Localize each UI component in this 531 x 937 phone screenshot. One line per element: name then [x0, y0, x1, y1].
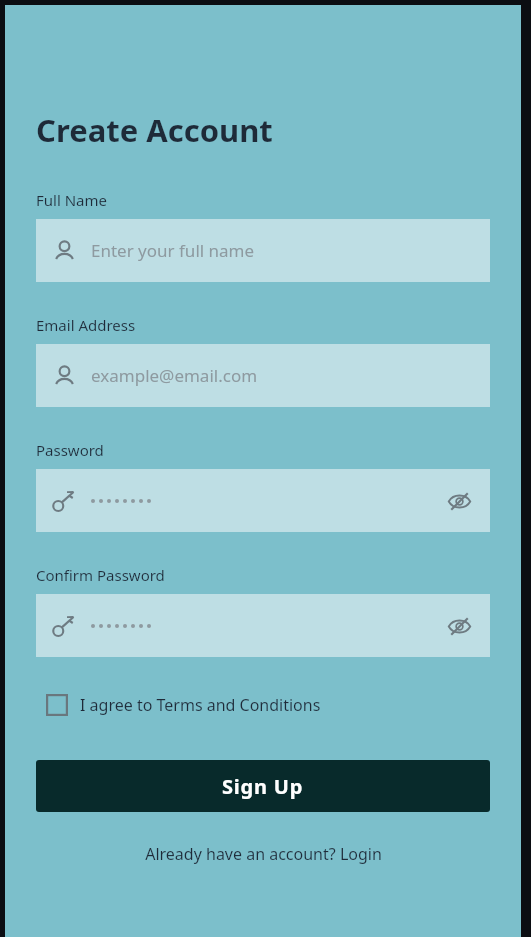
- button[interactable]: Toggle password visibility: [36, 594, 490, 657]
- button[interactable]: Toggle password visibility: [442, 609, 476, 643]
- staticText: I agree to Terms and Conditions: [80, 694, 321, 716]
- staticText: Email Address: [36, 315, 136, 335]
- button[interactable]: Toggle password visibility: [442, 484, 476, 518]
- staticText: Password: [36, 440, 104, 460]
- staticText: Enter your full name: [91, 239, 255, 262]
- staticText: Confirm Password: [36, 565, 165, 585]
- button[interactable]: example@email.com: [36, 344, 490, 407]
- staticText: Sign Up: [222, 773, 304, 800]
- button[interactable]: Already have an account? Login: [137, 839, 390, 869]
- staticText: Full Name: [36, 190, 107, 210]
- button[interactable]: Sign Up: [36, 760, 490, 812]
- staticText: Create Account: [36, 109, 273, 151]
- button[interactable]: Toggle password visibility: [36, 469, 490, 532]
- button[interactable]: Enter your full name: [36, 219, 490, 282]
- button[interactable]: I agree to Terms and Conditions: [36, 688, 331, 722]
- staticText: example@email.com: [91, 364, 258, 387]
